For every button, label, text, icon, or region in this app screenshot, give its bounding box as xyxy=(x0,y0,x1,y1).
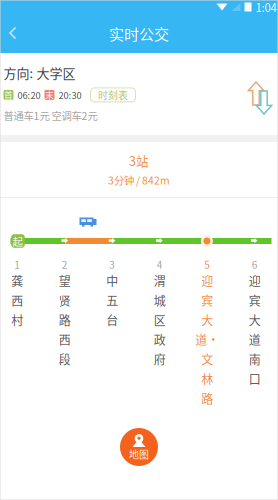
button[interactable]: 2 xyxy=(41,258,88,408)
staticText: 文 xyxy=(201,350,213,368)
staticText: 林 xyxy=(201,370,213,387)
staticText: 大 xyxy=(249,311,261,329)
staticText: 道 xyxy=(249,331,261,348)
button[interactable]: Map xyxy=(120,428,158,466)
button[interactable]: 4 xyxy=(136,258,183,408)
staticText: 普通车1元 空调车2元 xyxy=(3,108,97,123)
staticText: 3站 xyxy=(129,151,149,169)
staticText: 台 xyxy=(106,311,118,329)
staticText: 中 xyxy=(106,272,118,289)
staticText: 贤 xyxy=(59,292,71,309)
staticText: 起 xyxy=(12,233,23,249)
staticText: 路 xyxy=(201,390,213,407)
staticText: 3 xyxy=(109,257,115,272)
staticText: 政 xyxy=(154,331,166,348)
staticText: 6 xyxy=(252,257,258,272)
staticText: 城 xyxy=(154,292,166,309)
staticText: 段 xyxy=(59,350,71,368)
staticText: 方向: 大学区 xyxy=(3,63,75,82)
staticText: 五 xyxy=(106,292,118,309)
button[interactable]: Back xyxy=(0,14,29,53)
staticText: 1:04 xyxy=(255,0,276,15)
button[interactable]: 1 xyxy=(0,258,41,408)
staticText: 末 xyxy=(45,89,54,101)
staticText: 村 xyxy=(11,311,23,329)
staticText: 渭 xyxy=(154,272,166,289)
staticText: 南 xyxy=(249,350,261,368)
staticText: 路 xyxy=(59,311,71,329)
button[interactable]: 6 xyxy=(231,258,278,408)
staticText: 1 xyxy=(14,257,20,272)
staticText: 区 xyxy=(154,311,166,329)
staticText: 西 xyxy=(59,331,71,348)
staticText: 道· xyxy=(195,331,219,348)
staticText: 大 xyxy=(201,311,213,329)
button[interactable]: 时刻表 xyxy=(90,88,135,102)
staticText: 06:20 xyxy=(17,88,40,102)
staticText: 实时公交 xyxy=(109,23,169,44)
staticText: 宾 xyxy=(249,292,261,309)
staticText: 龚 xyxy=(11,272,23,289)
button[interactable]: 3 xyxy=(88,258,136,408)
staticText: 首 xyxy=(4,89,13,101)
staticText: 20:30 xyxy=(58,88,81,102)
staticText: 迎 xyxy=(201,272,213,289)
staticText: 时刻表 xyxy=(98,88,128,102)
staticText: 口 xyxy=(249,370,261,387)
staticText: 府 xyxy=(154,350,166,368)
button[interactable]: Switch direction xyxy=(247,81,272,115)
staticText: 地图 xyxy=(129,447,149,461)
staticText: 4 xyxy=(157,257,163,272)
staticText: 西 xyxy=(11,292,23,309)
staticText: 宾 xyxy=(201,292,213,309)
staticText: 5 xyxy=(204,257,210,272)
staticText: 3分钟 / 842m xyxy=(108,172,170,188)
staticText: 望 xyxy=(59,272,71,289)
staticText: 2 xyxy=(62,257,68,272)
button[interactable]: 5 xyxy=(183,258,231,408)
staticText: 迎 xyxy=(249,272,261,289)
